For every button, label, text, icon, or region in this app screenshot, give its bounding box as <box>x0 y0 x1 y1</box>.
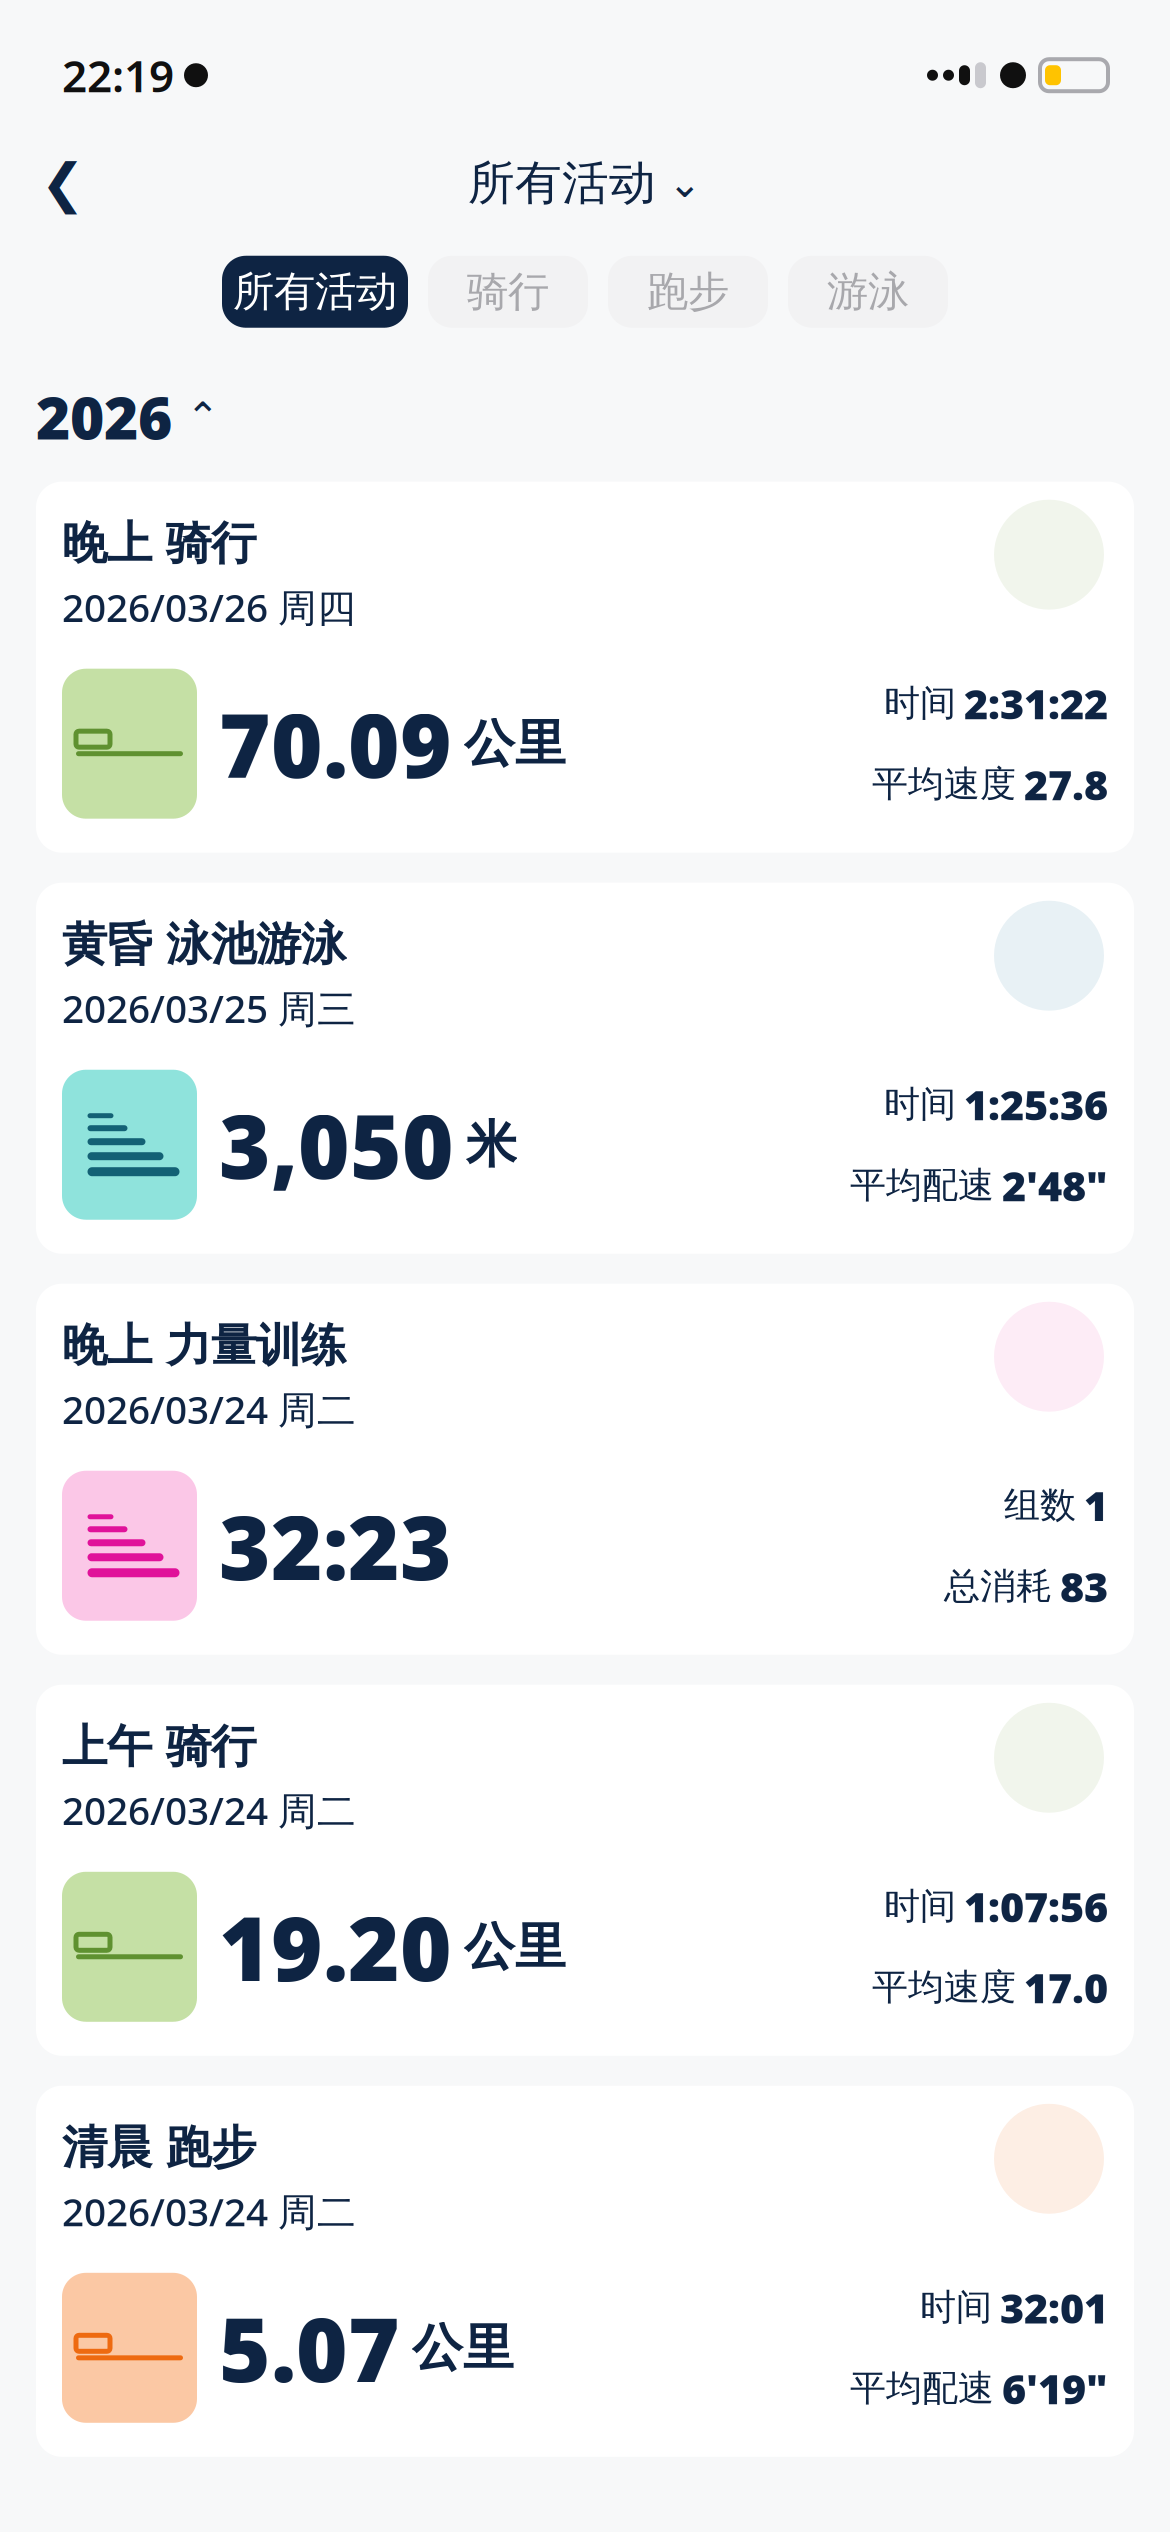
staticText: 2026/03/24 周二 <box>62 1383 356 1435</box>
staticText: 时间 <box>884 1082 956 1126</box>
staticText: 83 <box>1060 1559 1108 1614</box>
staticText: 2026/03/24 周二 <box>62 1784 356 1836</box>
button[interactable]: 骑行 <box>428 256 588 328</box>
staticText: 19.20 <box>219 1888 452 2005</box>
staticText: 总消耗 <box>944 1564 1052 1608</box>
staticText: 公里 <box>412 2317 514 2379</box>
staticText: 2:31:22 <box>964 676 1108 731</box>
staticText: 所有活动 <box>468 154 656 212</box>
staticText: 32:01 <box>1000 2280 1108 2335</box>
staticText: 2026/03/24 周二 <box>62 2185 356 2237</box>
button[interactable]: 晚上 力量训练 <box>36 1284 1134 1655</box>
button[interactable]: 上午 骑行 <box>36 1685 1134 2056</box>
staticText: 22:19 <box>62 46 174 104</box>
staticText: 17.0 <box>1024 1960 1108 2015</box>
staticText: 3,050 <box>219 1086 454 1203</box>
staticText: ⌃ <box>186 394 220 439</box>
staticText: 晚上 骑行 <box>62 516 256 571</box>
staticText: 时间 <box>920 2285 992 2329</box>
staticText: 游泳 <box>827 266 909 317</box>
staticText: 5.07 <box>219 2289 400 2406</box>
staticText: 晚上 力量训练 <box>62 1318 346 1373</box>
button[interactable]: 返回 <box>28 148 98 218</box>
staticText: 组数 <box>1004 1483 1076 1527</box>
staticText: 骑行 <box>467 266 549 317</box>
staticText: 2026 <box>36 378 172 456</box>
button[interactable]: 跑步 <box>608 256 768 328</box>
staticText: 所有活动 <box>233 266 397 317</box>
staticText: 时间 <box>884 681 956 725</box>
staticText: 70.09 <box>219 685 452 802</box>
staticText: 1:25:36 <box>964 1077 1108 1132</box>
button[interactable]: 晚上 骑行 <box>36 482 1134 853</box>
button[interactable]: 2026 <box>0 328 1170 482</box>
staticText: 黄昏 泳池游泳 <box>62 917 346 972</box>
staticText: 平均配速 <box>850 2366 994 2410</box>
staticText: 2026/03/25 周三 <box>62 982 356 1034</box>
staticText: ⌄ <box>668 160 702 206</box>
staticText: 平均速度 <box>872 1965 1016 2009</box>
staticText: 32:23 <box>219 1487 452 1604</box>
staticText: 27.8 <box>1024 757 1108 812</box>
staticText: 跑步 <box>647 266 729 317</box>
button[interactable]: 所有活动 <box>458 146 712 220</box>
staticText: 公里 <box>464 1916 566 1978</box>
staticText: 2026/03/26 周四 <box>62 581 356 633</box>
staticText: 1:07:56 <box>964 1879 1108 1934</box>
button[interactable]: 黄昏 泳池游泳 <box>36 883 1134 1254</box>
button[interactable]: 所有活动 <box>222 256 408 328</box>
staticText: 平均速度 <box>872 762 1016 806</box>
staticText: 时间 <box>884 1884 956 1928</box>
staticText: 1 <box>1084 1478 1108 1533</box>
staticText: 清晨 跑步 <box>62 2120 256 2175</box>
staticText: ❮ <box>40 153 85 213</box>
staticText: 公里 <box>464 713 566 775</box>
button[interactable]: 游泳 <box>788 256 948 328</box>
staticText: 米 <box>466 1114 517 1176</box>
staticText: 上午 骑行 <box>62 1719 256 1774</box>
staticText: 2'48" <box>1002 1158 1108 1213</box>
button[interactable]: 清晨 跑步 <box>36 2086 1134 2457</box>
staticText: 平均配速 <box>850 1163 994 1207</box>
staticText: 6'19" <box>1002 2361 1108 2416</box>
